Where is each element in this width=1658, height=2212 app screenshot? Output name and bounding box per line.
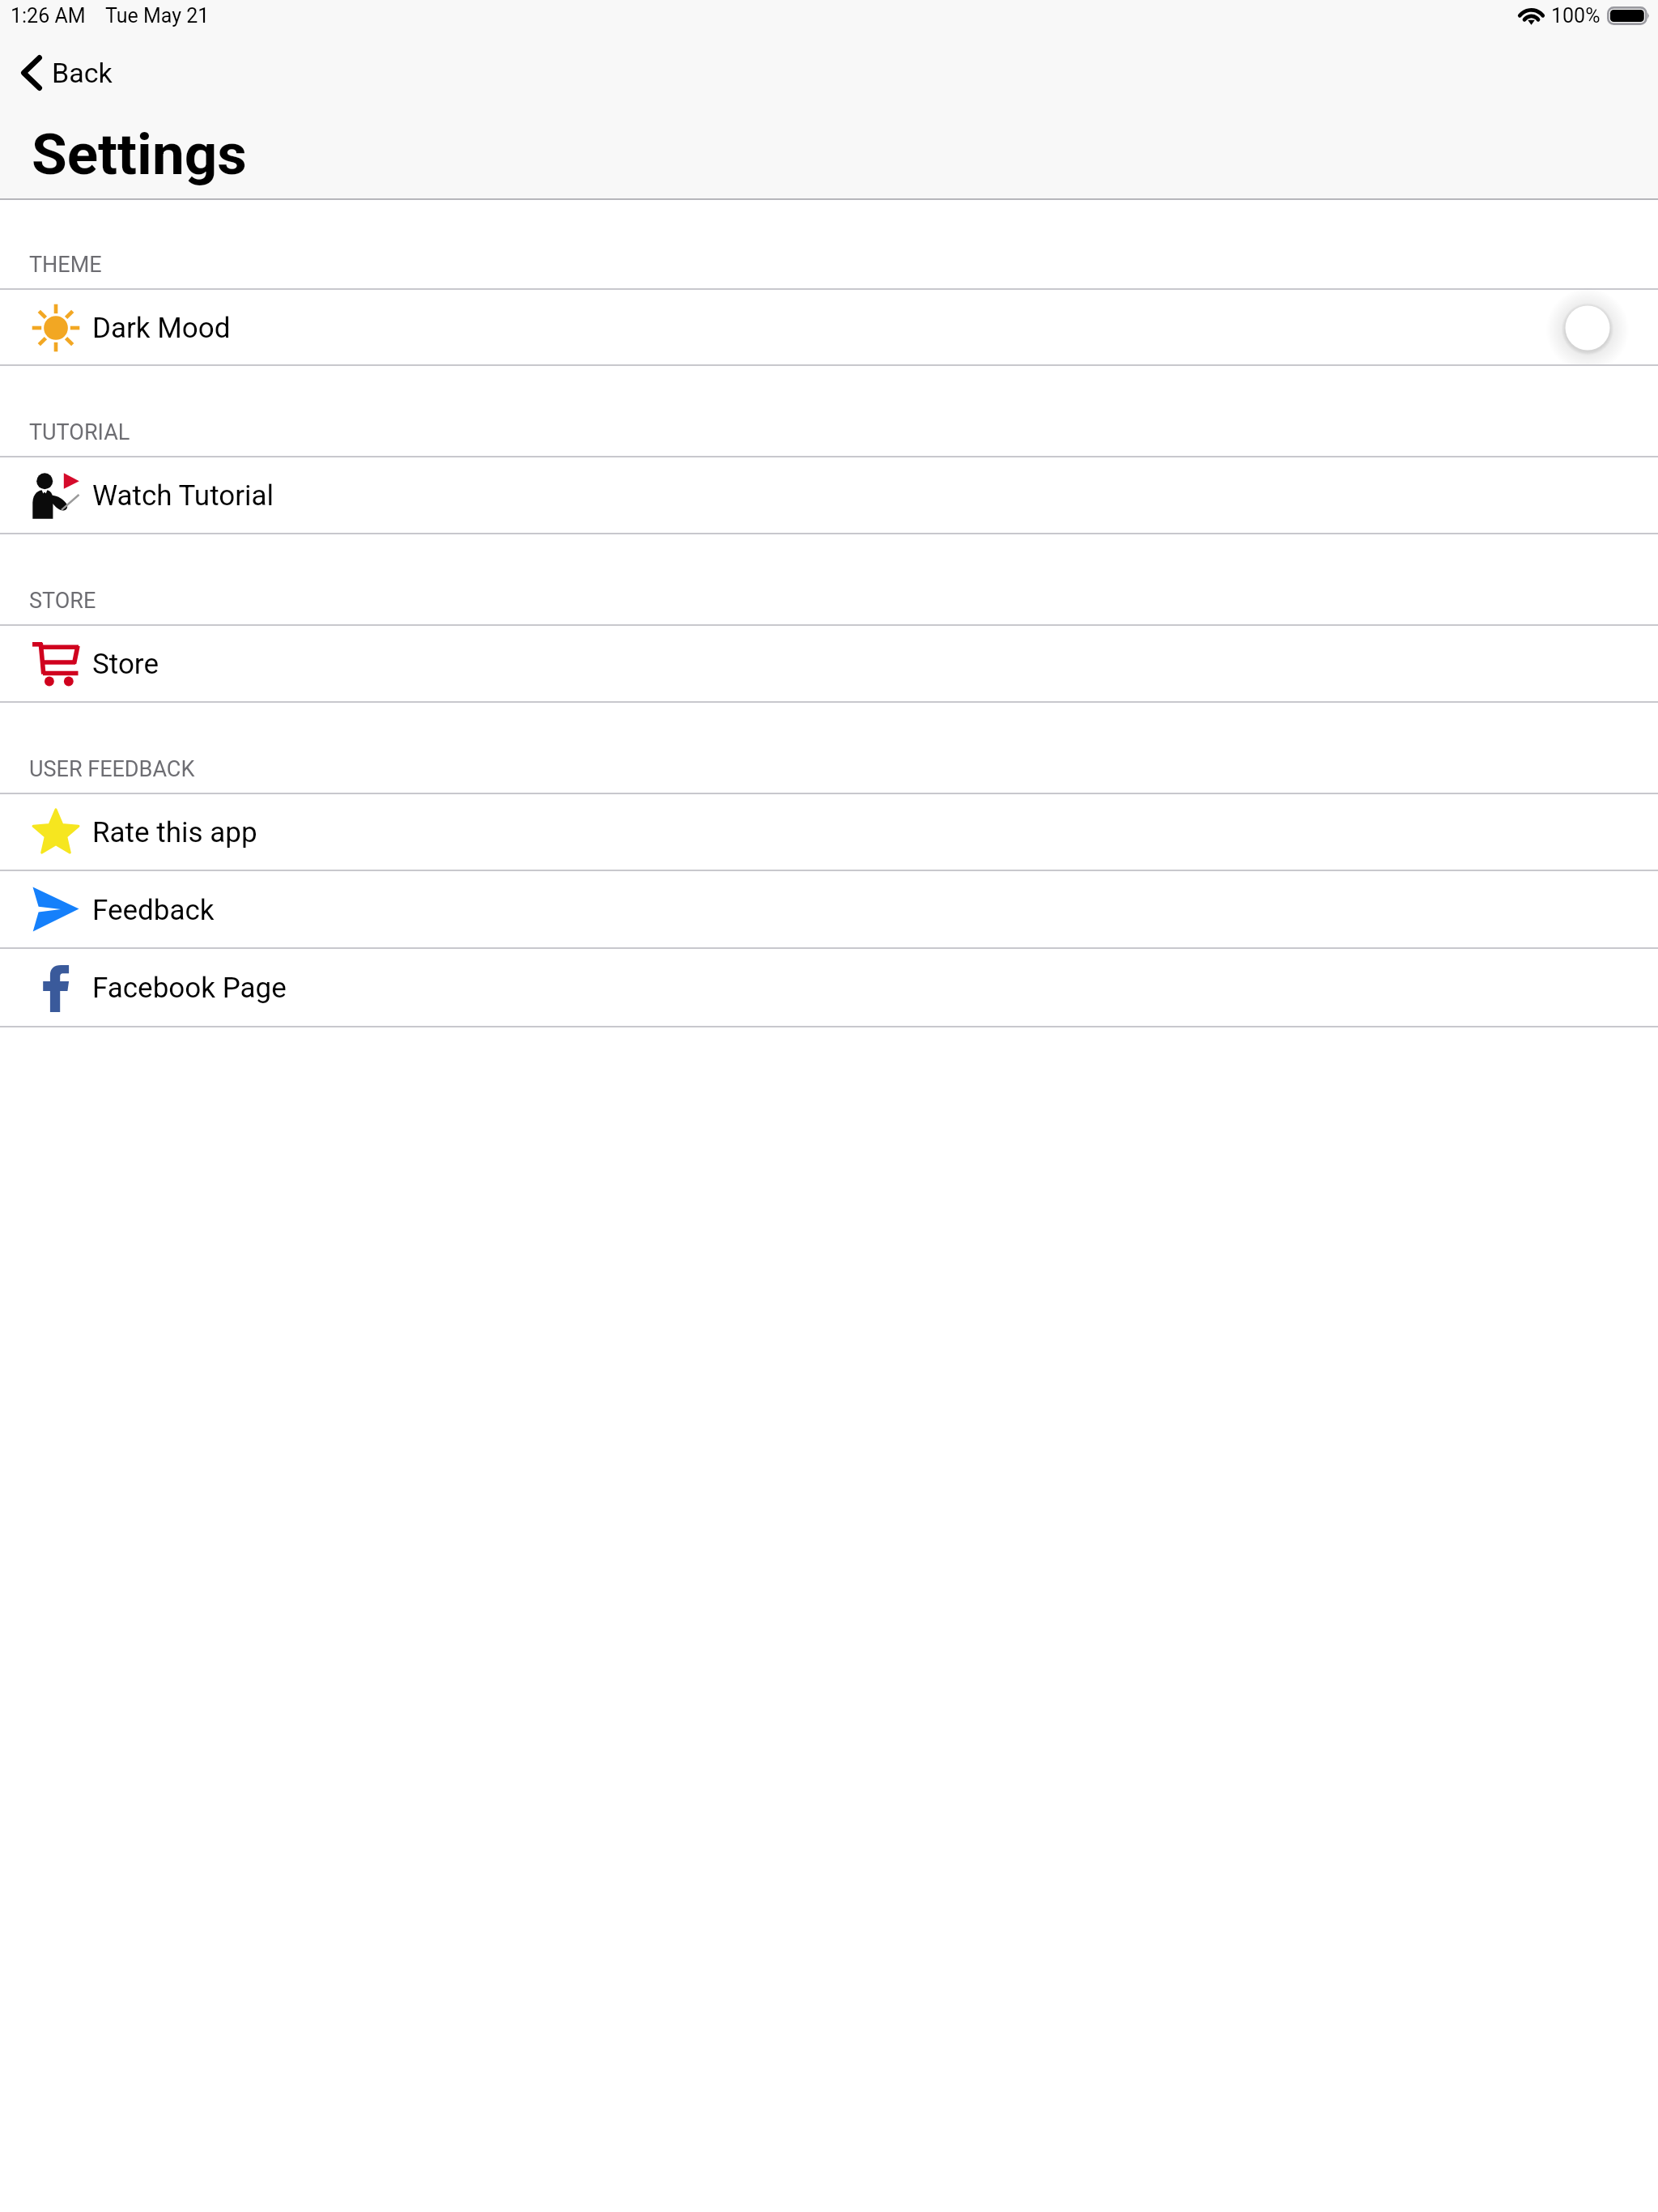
button[interactable]: Facebook Page: [0, 949, 1658, 1027]
staticText: THEME: [29, 252, 102, 278]
staticText: Dark Mood: [92, 312, 231, 345]
staticText: USER FEEDBACK: [29, 756, 195, 782]
staticText: Feedback: [92, 894, 215, 927]
button[interactable]: Back: [6, 45, 113, 101]
staticText: 100%: [1551, 4, 1601, 28]
staticText: Back: [52, 57, 113, 89]
staticText: TUTORIAL: [29, 419, 130, 445]
button[interactable]: Toggle dark mode: [1543, 290, 1632, 366]
staticText: Store: [92, 648, 159, 681]
staticText: Facebook Page: [92, 972, 287, 1005]
staticText: Watch Tutorial: [92, 479, 274, 513]
button[interactable]: Store: [0, 626, 1658, 703]
button[interactable]: Rate this app: [0, 794, 1658, 871]
staticText: Tue May 21: [105, 4, 210, 28]
staticText: Rate this app: [92, 816, 257, 849]
button[interactable]: Feedback: [0, 871, 1658, 949]
button[interactable]: Watch Tutorial: [0, 457, 1658, 534]
staticText: Settings: [32, 121, 247, 188]
button[interactable]: Dark Mood: [0, 290, 1658, 366]
staticText: STORE: [29, 588, 96, 614]
staticText: 1:26 AM: [11, 4, 86, 28]
